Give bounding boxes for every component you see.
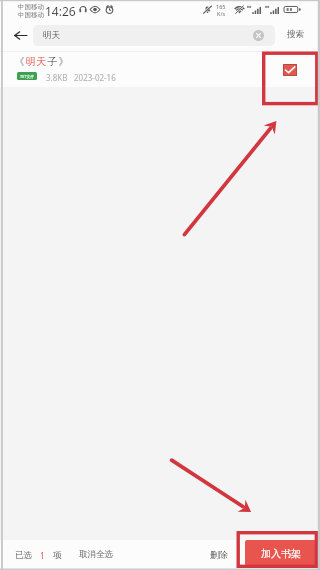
staticText: 3.8KB bbox=[46, 72, 68, 83]
staticText: 中国移动 bbox=[18, 11, 44, 19]
button[interactable]: 搜索 bbox=[279, 22, 311, 47]
staticText: 14:26 bbox=[45, 3, 76, 19]
button[interactable]: 删除 bbox=[204, 542, 234, 566]
staticText: 165 bbox=[216, 3, 226, 10]
staticText: 1 bbox=[40, 550, 45, 562]
staticText: 《明天子》 bbox=[14, 55, 69, 68]
staticText: 删除 bbox=[210, 549, 228, 560]
staticText: 已选 bbox=[15, 550, 32, 561]
button[interactable]: 加入书架 bbox=[245, 540, 316, 566]
staticText: K/s bbox=[217, 10, 226, 17]
button[interactable]: 《明天子》 bbox=[0, 52, 320, 87]
button[interactable]: Back bbox=[10, 25, 31, 46]
staticText: 搜索 bbox=[287, 29, 304, 40]
button[interactable]: 明天 bbox=[33, 25, 275, 46]
button[interactable]: Selected bbox=[283, 64, 297, 76]
staticText: 中国移动 bbox=[18, 3, 44, 11]
button[interactable]: Clear search bbox=[253, 30, 264, 41]
staticText: 加入书架 bbox=[261, 547, 301, 560]
staticText: TXT文件 bbox=[20, 74, 35, 79]
staticText: 2023-02-16 bbox=[74, 72, 116, 83]
button[interactable]: 取消全选 bbox=[72, 542, 120, 566]
staticText: 取消全选 bbox=[79, 549, 113, 560]
staticText: 明天 bbox=[43, 30, 60, 41]
staticText: 项 bbox=[53, 550, 62, 561]
